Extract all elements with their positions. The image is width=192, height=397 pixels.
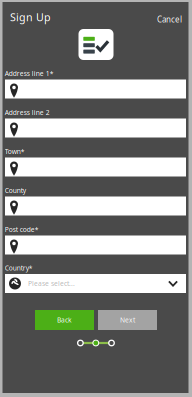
button[interactable]: Sign Up [10, 10, 51, 24]
button[interactable] [5, 196, 186, 215]
button[interactable]: Next [98, 310, 157, 330]
staticText: County [5, 186, 26, 195]
button[interactable]: Back [35, 310, 94, 330]
button[interactable]: Please select... [5, 274, 186, 293]
staticText: Post code* [5, 225, 39, 234]
staticText: Please select... [28, 279, 75, 288]
staticText: Address line 1* [5, 69, 54, 78]
button[interactable] [5, 157, 186, 176]
staticText: Country* [5, 263, 33, 272]
staticText: Sign Up [10, 10, 51, 24]
button[interactable]: Cancel [157, 14, 182, 25]
staticText: Back [57, 316, 72, 324]
staticText: Town* [5, 147, 25, 156]
staticText: Cancel [157, 14, 182, 25]
button[interactable] [5, 79, 186, 98]
staticText: Next [120, 316, 135, 324]
staticText: Address line 2 [5, 108, 50, 117]
button[interactable] [5, 235, 186, 254]
button[interactable] [5, 118, 186, 137]
